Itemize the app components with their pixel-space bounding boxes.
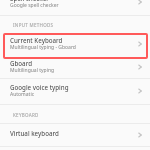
button[interactable]: Current Keyboard [0,32,150,55]
staticText: Current Keyboard [10,36,63,44]
staticText: Google spell checker [10,2,59,9]
button[interactable]: Spell checker [0,0,150,14]
staticText: Virtual keyboard [10,129,59,137]
button[interactable]: Gboard [0,55,150,78]
staticText: INPUT METHODS [13,22,54,28]
staticText: Multilingual typing - Gboard [10,44,76,51]
staticText: KEYBOARD [13,112,39,118]
staticText: Google voice typing [10,83,69,91]
staticText: Gboard [10,59,32,67]
button[interactable]: Virtual keyboard [0,123,150,146]
staticText: Automatic [10,91,35,98]
staticText: Multilingual typing [10,67,55,74]
staticText: Spell checker [10,0,49,2]
button[interactable]: Google voice typing [0,79,150,102]
